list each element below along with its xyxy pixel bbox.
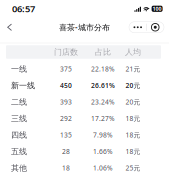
staticText: 23.24% xyxy=(91,98,115,106)
button[interactable]: More xyxy=(129,22,146,33)
staticText: 375 xyxy=(60,65,72,73)
button[interactable]: Back xyxy=(0,19,21,36)
staticText: 7.98% xyxy=(93,131,113,139)
staticText: 292 xyxy=(60,114,72,123)
staticText: 100 xyxy=(153,5,162,12)
staticText: 门店数 xyxy=(54,47,78,57)
staticText: 18 xyxy=(62,164,70,172)
staticText: 18元 xyxy=(125,147,140,156)
staticText: 1.66% xyxy=(93,147,113,156)
staticText: 17.27% xyxy=(91,114,115,123)
staticText: 18元 xyxy=(125,114,140,123)
staticText: 18元 xyxy=(125,131,140,139)
staticText: 喜茶-城市分布 xyxy=(59,22,110,32)
staticText: 21元 xyxy=(125,65,140,73)
staticText: 四线 xyxy=(11,130,27,140)
staticText: 20元 xyxy=(125,81,140,90)
staticText: 其他 xyxy=(11,163,27,173)
staticText: 三线 xyxy=(11,114,27,123)
staticText: 06:57 xyxy=(12,3,35,15)
staticText: 22.18% xyxy=(91,65,115,73)
staticText: 一线 xyxy=(11,64,27,74)
staticText: 二线 xyxy=(11,97,27,107)
staticText: 20元 xyxy=(125,98,140,106)
staticText: 人均 xyxy=(125,47,141,57)
staticText: 28 xyxy=(62,147,70,156)
staticText: 135 xyxy=(60,131,72,139)
button[interactable]: Close xyxy=(147,22,164,33)
staticText: 新一线 xyxy=(11,81,35,90)
staticText: 1.06% xyxy=(93,164,113,172)
staticText: 26.61% xyxy=(91,81,115,90)
staticText: 五线 xyxy=(11,147,27,156)
staticText: 25元 xyxy=(125,164,140,172)
staticText: 393 xyxy=(60,98,72,106)
staticText: 450 xyxy=(60,81,72,90)
staticText: 占比 xyxy=(95,47,111,57)
